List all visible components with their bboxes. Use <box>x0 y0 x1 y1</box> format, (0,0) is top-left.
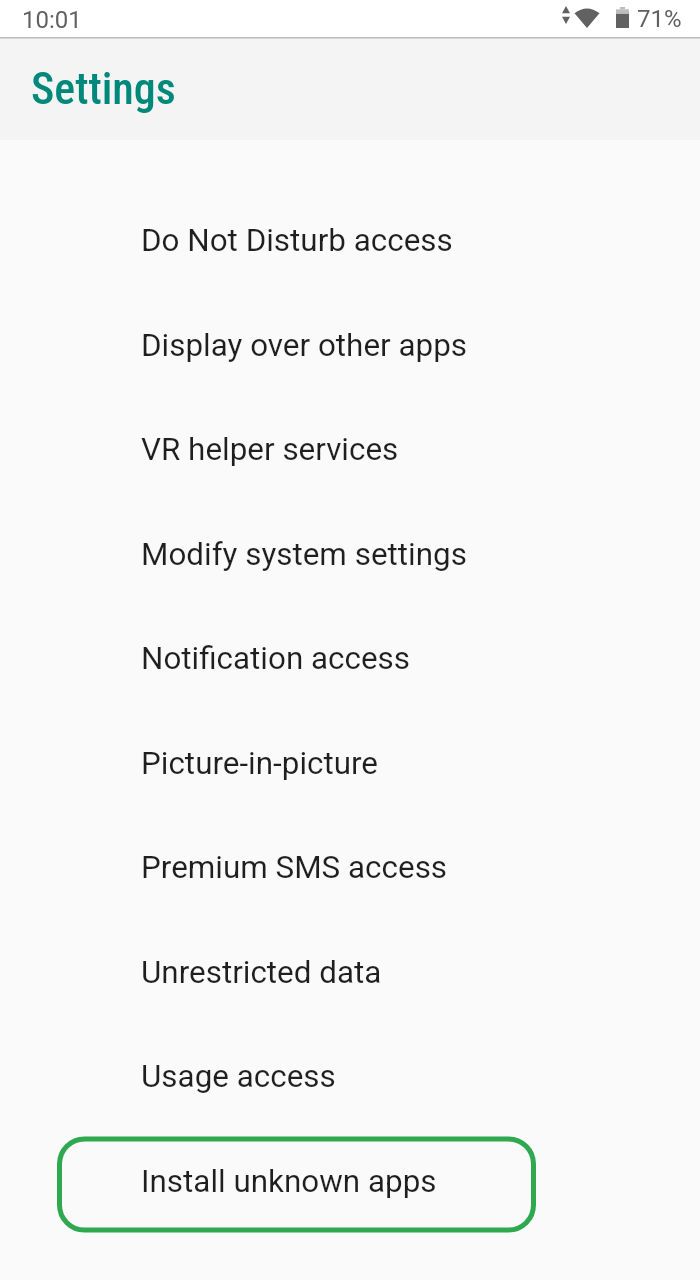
button[interactable]: Usage access <box>0 1024 700 1129</box>
staticText: Usage access <box>141 1058 336 1095</box>
other: Mobile data activity <box>562 6 570 24</box>
other: Battery 71 percent <box>616 7 629 28</box>
staticText: Display over other apps <box>141 327 467 364</box>
staticText: Notification access <box>141 640 411 677</box>
button[interactable]: Modify system settings <box>0 502 700 607</box>
staticText: VR helper services <box>141 431 399 468</box>
staticText: Do Not Disturb access <box>141 222 453 259</box>
staticText: Modify system settings <box>141 536 467 573</box>
button[interactable]: Picture-in-picture <box>0 711 700 816</box>
staticText: Settings <box>31 63 176 115</box>
button[interactable]: Premium SMS access <box>0 815 700 920</box>
button[interactable]: Install unknown apps <box>0 1129 700 1234</box>
button[interactable]: Do Not Disturb access <box>0 188 700 293</box>
other: Wi-Fi connected <box>574 7 600 28</box>
staticText: 10:01 <box>22 6 82 34</box>
staticText: Picture-in-picture <box>141 745 379 782</box>
staticText: Premium SMS access <box>141 849 448 886</box>
button[interactable]: Notification access <box>0 606 700 711</box>
staticText: Install unknown apps <box>141 1163 437 1200</box>
staticText: 71% <box>637 5 682 33</box>
staticText: Unrestricted data <box>141 954 382 991</box>
button[interactable]: VR helper services <box>0 397 700 502</box>
button[interactable]: Unrestricted data <box>0 920 700 1025</box>
button[interactable]: Display over other apps <box>0 293 700 398</box>
